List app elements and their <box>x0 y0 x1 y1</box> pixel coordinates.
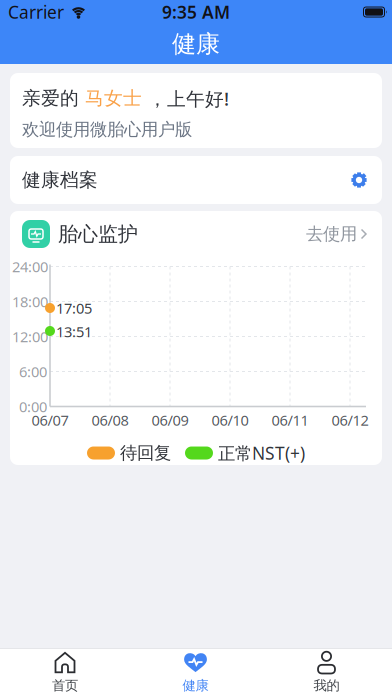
staticText: 9:35 AM <box>162 0 230 23</box>
staticText: 06/12 <box>331 410 368 430</box>
staticText: 12:00 <box>12 327 48 346</box>
staticText: 健康 <box>182 677 208 694</box>
staticText: 13:51 <box>56 322 92 341</box>
staticText: 06/09 <box>151 410 188 430</box>
button[interactable]: 首页 <box>0 648 130 696</box>
staticText: 06/10 <box>211 410 248 430</box>
staticText: 正常NST(+) <box>218 441 305 464</box>
staticText: 健康 <box>172 29 220 59</box>
staticText: 欢迎使用微胎心用户版 <box>22 119 192 140</box>
staticText: 去使用 <box>306 223 357 245</box>
staticText: 胎心监护 <box>58 222 138 246</box>
staticText: 24:00 <box>12 257 48 276</box>
staticText: 06/11 <box>271 410 308 430</box>
staticText: Carrier <box>8 0 64 23</box>
staticText: 待回复 <box>120 442 171 464</box>
staticText: 首页 <box>52 677 78 694</box>
staticText: 06/07 <box>31 410 68 430</box>
staticText: 0:00 <box>19 397 47 416</box>
staticText: 17:05 <box>56 298 92 318</box>
staticText: 18:00 <box>12 292 48 311</box>
button[interactable]: 健康档案 <box>10 156 382 204</box>
staticText: 06/08 <box>91 410 128 430</box>
staticText: ，上午好! <box>142 86 229 111</box>
button[interactable]: 去使用 <box>306 223 368 245</box>
staticText: 6:00 <box>19 362 47 381</box>
staticText: 马女士 <box>85 87 142 110</box>
button[interactable]: 我的 <box>261 648 392 696</box>
staticText: 我的 <box>313 677 339 694</box>
staticText: 亲爱的 <box>22 87 85 110</box>
button[interactable]: 健康 <box>130 648 261 696</box>
staticText: 健康档案 <box>22 168 98 191</box>
